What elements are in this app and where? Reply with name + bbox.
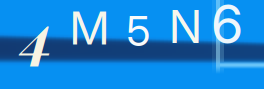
staticText: 4: [22, 0, 54, 73]
staticText: 5: [126, 6, 150, 56]
staticText: 6: [210, 0, 243, 56]
staticText: N: [168, 0, 202, 54]
staticText: M: [69, 1, 110, 55]
